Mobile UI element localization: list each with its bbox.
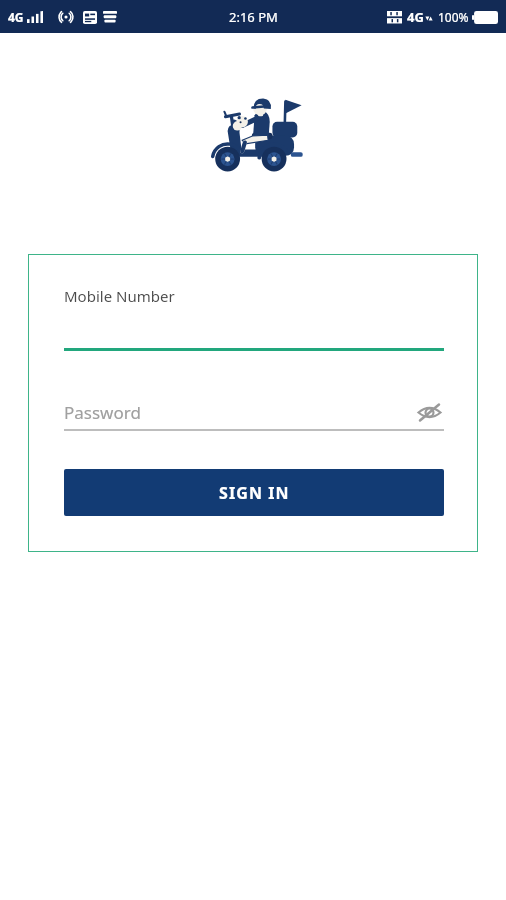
staticText: SIGN IN [219,482,290,504]
staticText: 2:16 PM [229,8,278,26]
staticText: Password [64,401,141,424]
button[interactable]: Password [64,395,444,429]
staticText: 4G [407,8,424,26]
staticText: Mobile Number [64,286,175,306]
button[interactable]: SIGN IN [64,469,444,516]
staticText: 4G [8,9,24,25]
staticText: 100% [438,9,469,25]
button[interactable]: Mobile Number [64,284,444,348]
button[interactable]: Show password [414,397,444,427]
